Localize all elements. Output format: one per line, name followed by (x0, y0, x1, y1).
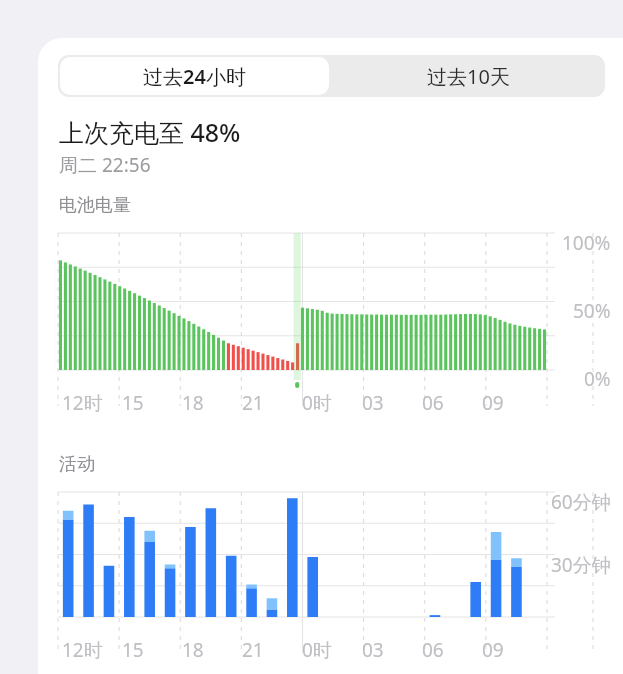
staticText: 12时 (62, 637, 103, 662)
staticText: 18 (182, 390, 204, 416)
staticText: 0时 (302, 390, 332, 416)
staticText: 0时 (302, 637, 332, 662)
staticText: 21 (242, 390, 264, 416)
staticText: 100% (562, 230, 611, 256)
staticText: 06 (422, 390, 444, 416)
button[interactable]: 过去24小时 (60, 57, 329, 95)
staticText: 30分钟 (551, 552, 611, 578)
staticText: 过去10天 (427, 63, 510, 90)
staticText: 09 (482, 390, 504, 416)
button[interactable]: 过去10天 (331, 55, 605, 97)
staticText: 过去24小时 (143, 63, 246, 90)
staticText: 03 (362, 637, 384, 662)
staticText: 21 (242, 637, 264, 662)
staticText: 上次充电至 48% (59, 115, 241, 149)
staticText: 12时 (62, 390, 103, 416)
staticText: 15 (122, 637, 144, 662)
staticText: 06 (422, 637, 444, 662)
staticText: 电池电量 (59, 194, 131, 217)
staticText: 活动 (59, 453, 95, 476)
staticText: 03 (362, 390, 384, 416)
staticText: 60分钟 (551, 489, 611, 515)
staticText: 50% (573, 298, 611, 324)
staticText: 0% (584, 366, 611, 392)
staticText: 周二 22:56 (59, 152, 151, 178)
staticText: 09 (482, 637, 504, 662)
staticText: 15 (122, 390, 144, 416)
staticText: 18 (182, 637, 204, 662)
